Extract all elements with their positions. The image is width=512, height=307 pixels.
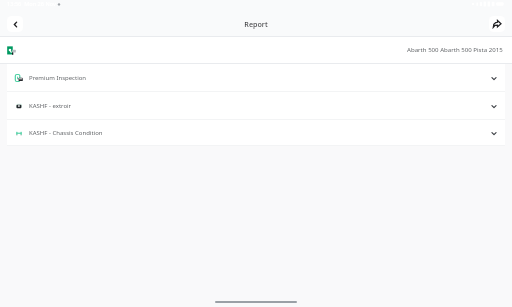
staticText: KASHF - extroir [29, 102, 72, 110]
staticText: Premium Inspection [29, 74, 87, 82]
button[interactable]: KASHF - Chassis Condition [7, 120, 505, 145]
staticText: KASHF - Chassis Condition [29, 129, 103, 137]
button[interactable]: Share [489, 16, 505, 32]
button[interactable]: KASHF - extroir [7, 92, 505, 119]
button[interactable]: Back [7, 16, 23, 32]
staticText: Report [244, 19, 268, 29]
button[interactable]: Premium Inspection [7, 64, 505, 91]
staticText: Abarth 500 Abarth 500 Pista 2015 [407, 45, 503, 53]
